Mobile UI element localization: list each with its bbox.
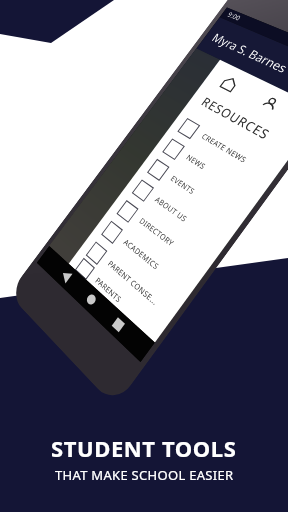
staticText: ABOUT US [69,225,106,235]
button[interactable]: CREATE NEWS [35,146,149,170]
staticText: PARENTS [69,316,101,326]
staticText: CREATE NEWS [69,153,119,163]
staticText: PARENT CONSE... [69,297,130,307]
button[interactable]: ACADEMICS [35,266,149,290]
button[interactable]: PARENTS [35,314,149,327]
button[interactable]: PARENT CONSE... [35,290,149,314]
staticText: EVENTS [69,201,96,211]
staticText: STUDENT TOOLS [51,433,237,463]
button[interactable]: DIRECTORY [35,242,149,266]
staticText: ACADEMICS [69,273,111,283]
staticText: 9:00 [11,36,25,46]
staticText: NEWS [69,177,90,187]
button[interactable]: NEWS [35,170,149,194]
staticText: THAT MAKE SCHOOL EASIER [55,466,234,484]
button[interactable]: ABOUT US [35,218,149,242]
button[interactable]: EVENTS [35,194,149,218]
staticText: DIRECTORY [69,249,110,259]
